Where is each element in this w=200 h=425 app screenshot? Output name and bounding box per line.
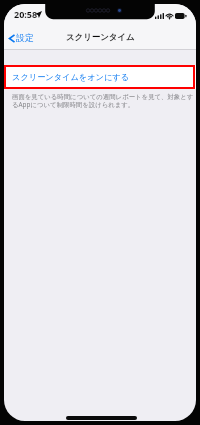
staticText: スクリーンタイム bbox=[66, 32, 135, 43]
staticText: 設定 bbox=[16, 33, 34, 44]
staticText: 20:58 bbox=[14, 8, 38, 20]
button[interactable]: 設定 bbox=[4, 30, 40, 47]
button[interactable]: スクリーンタイムをオンにする bbox=[4, 65, 196, 89]
staticText: 画面を見ている時間についての週間レポートを見て、対象とするAppについて制限時間… bbox=[12, 93, 195, 108]
staticText: スクリーンタイムをオンにする bbox=[12, 72, 130, 82]
